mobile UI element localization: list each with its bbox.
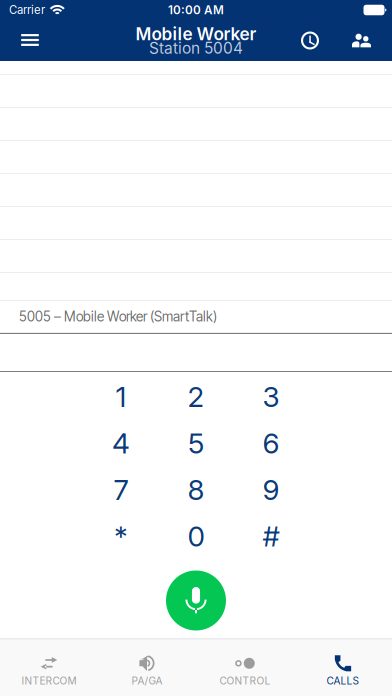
staticText: CALLS bbox=[326, 675, 359, 687]
button[interactable]: # bbox=[233, 513, 308, 559]
button[interactable]: Recents bbox=[290, 20, 330, 61]
button[interactable]: 9 bbox=[233, 466, 308, 513]
button[interactable]: 0 bbox=[158, 513, 233, 559]
staticText: 5005 – Mobile Worker (SmartTalk) bbox=[19, 308, 217, 325]
button[interactable]: Push to talk bbox=[166, 570, 226, 630]
button[interactable]: 4 bbox=[83, 420, 158, 466]
button[interactable]: Menu bbox=[8, 20, 52, 61]
staticText: 9 bbox=[262, 473, 279, 507]
button[interactable]: 5 bbox=[158, 420, 233, 466]
staticText: Station 5004 bbox=[149, 39, 243, 57]
button[interactable]: Contacts bbox=[341, 20, 382, 61]
button[interactable]: * bbox=[83, 513, 158, 559]
button[interactable]: 1 bbox=[83, 373, 158, 420]
button[interactable]: CALLS bbox=[294, 639, 392, 696]
staticText: * bbox=[114, 519, 128, 553]
staticText: 4 bbox=[112, 426, 130, 460]
staticText: 7 bbox=[113, 473, 128, 507]
staticText: 10:00 AM bbox=[168, 3, 224, 17]
button[interactable]: 8 bbox=[158, 466, 233, 513]
staticText: 2 bbox=[187, 380, 204, 414]
staticText: CONTROL bbox=[219, 675, 270, 687]
button[interactable] bbox=[0, 240, 392, 273]
staticText: 0 bbox=[187, 519, 204, 553]
button[interactable] bbox=[0, 141, 392, 174]
button[interactable]: 3 bbox=[233, 373, 308, 420]
button[interactable]: 7 bbox=[83, 466, 158, 513]
staticText: Mobile Worker bbox=[135, 23, 256, 44]
staticText: 3 bbox=[262, 380, 279, 414]
button[interactable] bbox=[0, 273, 392, 301]
button[interactable] bbox=[0, 61, 392, 75]
button[interactable]: CONTROL bbox=[196, 639, 294, 696]
staticText: # bbox=[262, 519, 279, 553]
staticText: 6 bbox=[262, 426, 279, 460]
button[interactable]: 6 bbox=[233, 420, 308, 466]
staticText: Carrier bbox=[9, 3, 45, 17]
button[interactable] bbox=[0, 207, 392, 240]
staticText: 1 bbox=[115, 380, 126, 414]
staticText: 5 bbox=[188, 426, 204, 460]
button[interactable]: INTERCOM bbox=[0, 639, 98, 696]
button[interactable] bbox=[0, 108, 392, 141]
button[interactable] bbox=[0, 174, 392, 207]
button[interactable]: PA/GA bbox=[98, 639, 196, 696]
button[interactable] bbox=[0, 75, 392, 108]
staticText: 8 bbox=[187, 473, 204, 507]
button[interactable]: 5005 – Mobile Worker (SmartTalk) bbox=[0, 301, 392, 333]
staticText: PA/GA bbox=[131, 675, 162, 687]
staticText: INTERCOM bbox=[21, 675, 76, 687]
button[interactable]: 2 bbox=[158, 373, 233, 420]
